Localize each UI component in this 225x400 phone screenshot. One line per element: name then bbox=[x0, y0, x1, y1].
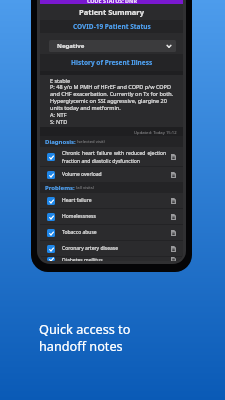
staticText: History of Present Illness bbox=[71, 58, 153, 67]
staticText: Diabetes mellitus bbox=[62, 257, 166, 261]
staticText: Quick access to bbox=[39, 320, 131, 337]
staticText: Chronic heart failure with reduced eject… bbox=[62, 150, 166, 164]
staticText: CODE STATUS: DNR bbox=[87, 0, 137, 4]
button[interactable]: Chronic heart failure with reduced eject… bbox=[40, 147, 183, 166]
staticText: Negative bbox=[57, 42, 85, 50]
staticText: Volume overload bbox=[62, 171, 166, 178]
button[interactable]: Heart failure bbox=[40, 193, 183, 208]
other: Open note bbox=[171, 257, 176, 261]
staticText: Diagnosis: bbox=[45, 138, 76, 146]
staticText: Heart failure bbox=[62, 197, 166, 204]
other: Open note bbox=[171, 214, 176, 220]
button[interactable]: Volume overload bbox=[40, 167, 183, 182]
other: Open note bbox=[171, 172, 176, 178]
staticText: Homelessness bbox=[62, 213, 166, 220]
other: Open note bbox=[171, 230, 176, 236]
button[interactable]: Tobacco abuse bbox=[40, 225, 183, 240]
staticText: Tobacco abuse bbox=[62, 229, 166, 236]
button[interactable]: Diabetes mellitus bbox=[40, 257, 183, 261]
button[interactable]: Negative bbox=[49, 40, 176, 52]
button[interactable]: Coronary artery disease bbox=[40, 241, 183, 256]
button[interactable]: Homelessness bbox=[40, 209, 183, 224]
staticText: (all visits) bbox=[75, 185, 95, 191]
staticText: (selected visit) bbox=[76, 139, 105, 145]
staticText: E stable P: 48 y/o M PMH of HFrEF and CO… bbox=[50, 77, 176, 126]
staticText: Updated: Today 15:12 bbox=[134, 130, 177, 136]
other: Open note bbox=[171, 198, 176, 204]
staticText: Problems: bbox=[45, 184, 75, 192]
staticText: Patient Summary bbox=[79, 7, 144, 17]
staticText: handoff notes bbox=[39, 337, 123, 354]
other: Open note bbox=[171, 154, 176, 160]
other: Open note bbox=[171, 246, 176, 252]
staticText: Coronary artery disease bbox=[62, 245, 166, 252]
staticText: COVID-19 Patient Status bbox=[73, 22, 151, 31]
